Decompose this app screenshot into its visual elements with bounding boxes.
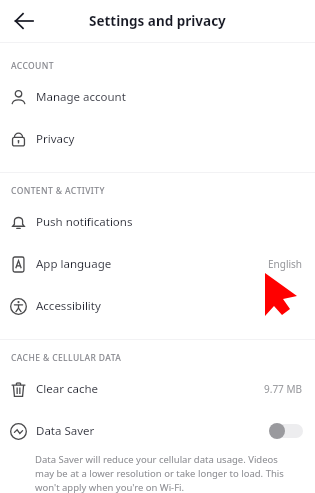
button[interactable]: Manage account <box>0 76 315 118</box>
button[interactable]: App language <box>0 243 315 285</box>
staticText: ACCOUNT <box>11 60 54 72</box>
staticText: App language <box>36 256 112 272</box>
staticText: English <box>268 257 303 271</box>
staticText: Push notifications <box>36 214 133 230</box>
button[interactable]: Privacy <box>0 118 315 160</box>
staticText: Privacy <box>36 131 75 147</box>
staticText: Accessibility <box>36 298 101 314</box>
button[interactable]: Accessibility <box>0 285 315 327</box>
staticText: Data Saver <box>36 423 95 439</box>
button[interactable]: Back <box>6 3 42 39</box>
staticText: Settings and privacy <box>89 12 226 30</box>
staticText: Clear cache <box>36 381 98 397</box>
staticText: CACHE & CELLULAR DATA <box>11 352 122 364</box>
staticText: Data Saver will reduce your cellular dat… <box>35 453 299 493</box>
button[interactable]: Data Saver <box>0 410 315 452</box>
button[interactable]: Clear cache <box>0 368 315 410</box>
staticText: Manage account <box>36 89 126 105</box>
button[interactable]: Push notifications <box>0 201 315 243</box>
staticText: CONTENT & ACTIVITY <box>11 185 105 197</box>
staticText: 9.77 MB <box>264 382 303 396</box>
